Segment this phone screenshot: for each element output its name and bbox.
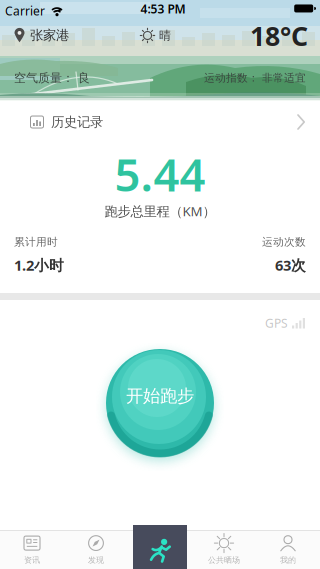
staticText: 运动次数 [262,235,306,248]
staticText: 张家港 [30,27,69,43]
button[interactable]: 资讯 [0,527,64,566]
button[interactable]: 历史记录 [0,103,320,141]
staticText: 发现 [88,555,104,565]
staticText: 公共晒场 [208,555,240,565]
button[interactable]: 发现 [64,527,128,566]
button[interactable]: 开始跑步 [106,349,214,457]
staticText: 晴 [159,28,171,43]
staticText: 4:53 PM [140,1,185,17]
staticText: 累计用时 [14,235,58,248]
staticText: 跑步总里程（KM） [104,202,215,220]
button[interactable]: 公共晒场 [192,527,256,566]
staticText: 63次 [275,255,306,275]
button[interactable]: 跑步 [128,525,192,569]
staticText: Carrier [5,3,45,19]
staticText: 1.2小时 [14,255,64,275]
staticText: 空气质量： 良 [14,71,90,85]
staticText: 历史记录 [51,114,103,130]
staticText: 我的 [280,555,296,565]
staticText: 5.44 [114,144,205,204]
button[interactable]: 我的 [256,527,320,566]
staticText: 18°C [250,18,308,53]
staticText: GPS [265,315,288,331]
staticText: 资讯 [24,555,40,565]
staticText: 开始跑步 [126,385,194,407]
staticText: 运动指数： 非常适宜 [204,71,306,84]
